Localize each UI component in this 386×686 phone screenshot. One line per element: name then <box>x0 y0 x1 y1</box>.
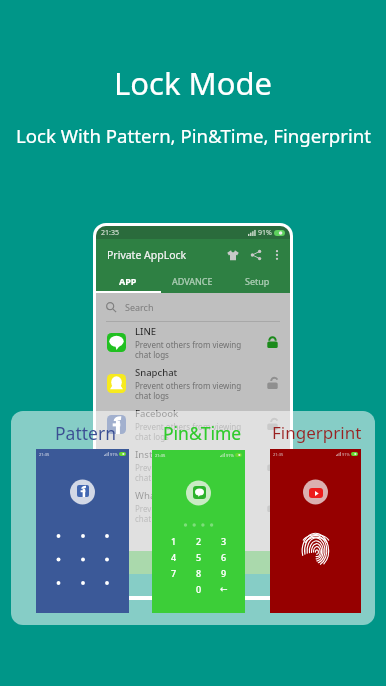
staticText: 21:35 <box>155 453 166 458</box>
button[interactable]: 9 <box>211 565 236 581</box>
staticText: 8 <box>196 567 202 579</box>
button[interactable]: Theme <box>224 246 242 264</box>
button[interactable]: WhatsApp <box>107 486 279 527</box>
staticText: Prevent others from viewing chat logs <box>135 421 242 442</box>
staticText: 6 <box>221 551 227 563</box>
staticText: 4 <box>171 551 177 563</box>
button[interactable]: 0 <box>186 581 211 597</box>
button[interactable]: Pin and time lock preview <box>152 450 245 613</box>
staticText: LOCK ALL APPS <box>156 556 231 570</box>
button[interactable]: Setup <box>225 270 290 291</box>
button[interactable]: ← <box>211 581 236 597</box>
staticText: Prevent others from viewing chat logs <box>135 339 242 360</box>
staticText: 0 <box>196 583 202 595</box>
staticText: Fingerprint <box>272 421 362 444</box>
button[interactable]: Fingerprint lock preview <box>270 449 361 613</box>
staticText: 91% <box>226 453 234 458</box>
staticText: Search <box>125 301 154 313</box>
staticText: Setup <box>245 275 270 287</box>
staticText: 91% <box>258 228 272 238</box>
staticText: ADVANCE <box>172 275 213 287</box>
button[interactable]: Pattern lock preview <box>36 449 129 613</box>
staticText: 5 <box>196 551 202 563</box>
staticText: Pattern <box>55 421 116 445</box>
staticText: 1 <box>171 535 177 547</box>
staticText: 9 <box>221 567 227 579</box>
staticText: 21:35 <box>273 452 284 457</box>
button[interactable]: 1 <box>161 533 186 549</box>
staticText: Instagram <box>135 448 183 461</box>
button[interactable]: ADVANCE <box>160 270 225 291</box>
staticText: Lock Mode <box>114 62 272 104</box>
button[interactable]: Facebook <box>107 404 279 445</box>
button[interactable]: 2 <box>186 533 211 549</box>
button[interactable]: 5 <box>186 549 211 565</box>
staticText: Lock With Pattern, Pin&Time, Fingerprint <box>16 123 371 148</box>
staticText: Snapchat <box>135 366 178 379</box>
button[interactable]: LOCK ALL APPS <box>96 551 290 574</box>
button[interactable]: 6 <box>211 549 236 565</box>
button[interactable]: LINE <box>107 322 279 363</box>
staticText: ← <box>220 584 228 594</box>
staticText: 2 <box>196 535 202 547</box>
staticText: WhatsApp <box>135 489 182 502</box>
button[interactable]: 8 <box>186 565 211 581</box>
staticText: 21:35 <box>101 228 119 238</box>
staticText: 91% <box>110 452 118 457</box>
staticText: Prevent others from viewing chat logs <box>135 503 242 524</box>
staticText: 91% <box>342 452 350 457</box>
staticText: Private AppLock <box>107 248 187 262</box>
button[interactable]: Snapchat <box>107 363 279 404</box>
button[interactable]: 4 <box>161 549 186 565</box>
staticText: 7 <box>171 567 177 579</box>
staticText: Prevent others from viewing chat logs <box>135 380 242 401</box>
button[interactable]: More options <box>269 247 285 263</box>
button[interactable]: Share <box>247 246 265 264</box>
staticText: APP <box>119 275 137 287</box>
button[interactable]: Instagram <box>107 445 279 486</box>
staticText: Prevent others from viewing chat logs <box>135 462 242 483</box>
staticText: 21:35 <box>39 452 50 457</box>
staticText: 3 <box>221 535 227 547</box>
button[interactable]: 7 <box>161 565 186 581</box>
button[interactable]: APP <box>96 270 160 291</box>
button[interactable]: 3 <box>211 533 236 549</box>
staticText: LINE <box>135 325 157 338</box>
staticText: Facebook <box>135 407 179 420</box>
staticText: Pin&Time <box>163 421 242 445</box>
